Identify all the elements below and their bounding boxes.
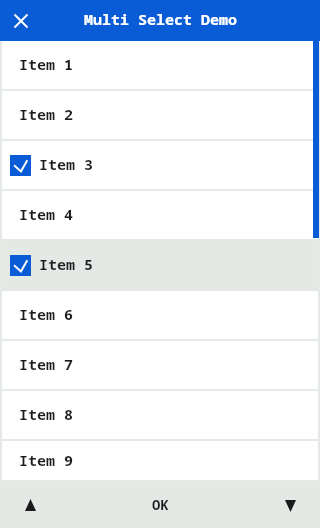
button[interactable]: OK — [152, 495, 169, 514]
button[interactable]: Item 2 — [0, 91, 320, 141]
button[interactable]: Item 6 — [0, 291, 320, 341]
button[interactable] — [278, 494, 302, 518]
button[interactable]: Item 4 — [0, 191, 320, 241]
button[interactable]: Item 9 — [0, 441, 320, 482]
staticText: Item 7 — [19, 354, 74, 374]
button[interactable]: Item 3 — [0, 141, 320, 191]
staticText: Item 2 — [19, 104, 74, 124]
staticText: Item 8 — [19, 404, 74, 424]
button[interactable] — [7, 7, 35, 35]
staticText: Item 9 — [19, 450, 74, 470]
staticText: Item 4 — [19, 204, 74, 224]
button[interactable] — [18, 493, 42, 517]
button[interactable]: Item 5 — [0, 241, 320, 291]
staticText: Item 3 — [39, 154, 94, 174]
staticText: Item 5 — [39, 254, 94, 274]
staticText: Item 6 — [19, 304, 74, 324]
button[interactable]: Item 8 — [0, 391, 320, 441]
button[interactable]: Item 7 — [0, 341, 320, 391]
staticText: Multi Select Demo — [84, 9, 238, 29]
button[interactable]: Item 1 — [0, 41, 320, 91]
staticText: Item 1 — [19, 54, 74, 74]
